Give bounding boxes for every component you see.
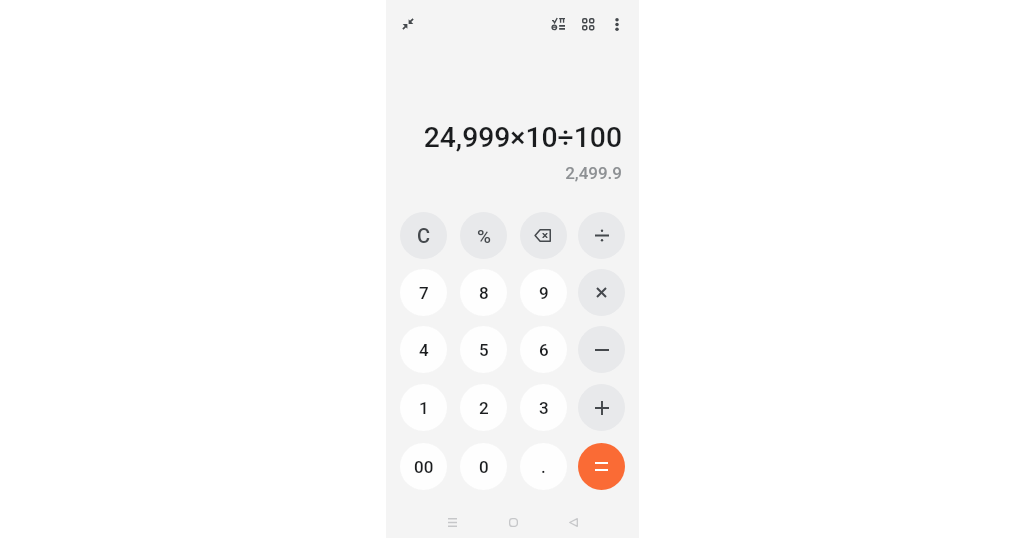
staticText: 9 [539,283,549,303]
button[interactable]: 3 [520,384,567,431]
staticText: 3 [539,398,549,418]
staticText: 1 [419,398,429,418]
staticText: 8 [479,283,489,303]
button[interactable]: 1 [400,384,447,431]
staticText: 00 [414,457,434,477]
button[interactable]: 9 [520,269,567,316]
button[interactable]: Equals [578,443,625,490]
button[interactable]: . [520,443,567,490]
button[interactable]: Calculator layouts [573,9,603,39]
button[interactable]: 00 [400,443,447,490]
staticText: 2,499.9 [565,163,622,183]
button[interactable]: 8 [460,269,507,316]
staticText: 7 [419,283,429,303]
button[interactable]: Recents [435,505,469,538]
button[interactable]: Collapse [391,7,425,41]
button[interactable]: % [460,212,507,259]
staticText: 6 [539,340,549,360]
button[interactable]: Backspace [520,212,567,259]
button[interactable]: Scientific calculator [543,9,573,39]
staticText: 4 [419,340,429,360]
button[interactable]: C [400,212,447,259]
button[interactable]: 0 [460,443,507,490]
staticText: 0 [479,457,489,477]
button[interactable]: 6 [520,326,567,373]
button[interactable]: 7 [400,269,447,316]
staticText: . [541,457,546,477]
staticText: 2 [479,398,489,418]
button[interactable]: Home [496,505,530,538]
button[interactable]: More options [602,9,632,39]
button[interactable]: Back [556,505,590,538]
button[interactable]: 4 [400,326,447,373]
staticText: % [477,225,491,247]
button[interactable]: Multiply [578,269,625,316]
staticText: C [417,224,431,247]
button[interactable]: Minus [578,326,625,373]
button[interactable]: 5 [460,326,507,373]
staticText: 5 [479,340,489,360]
button[interactable]: Plus [578,384,625,431]
button[interactable]: 2 [460,384,507,431]
button[interactable]: Divide [578,212,625,259]
staticText: 24,999×10÷100 [423,121,622,154]
